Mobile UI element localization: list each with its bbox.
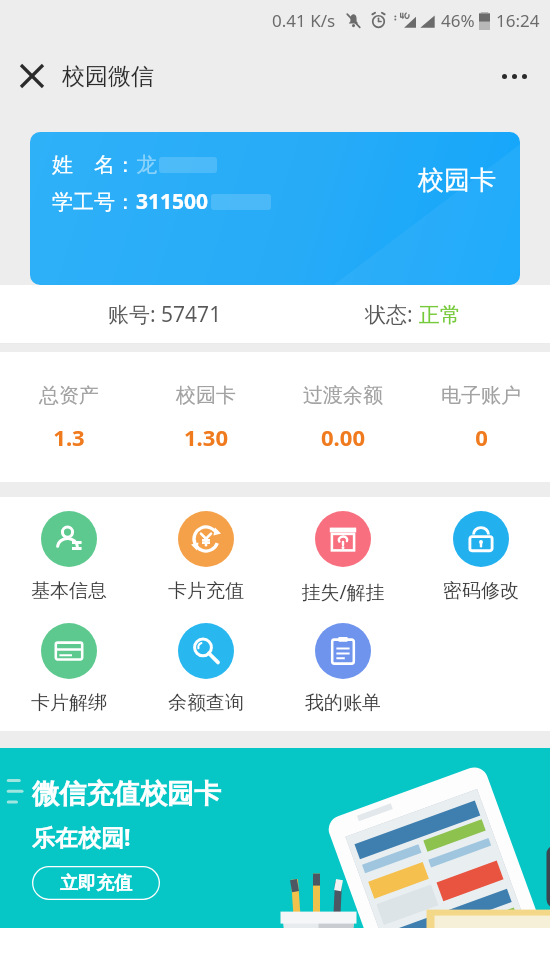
staticText: 龙 [136, 152, 157, 178]
button[interactable]: 卡片充值 [137, 511, 274, 603]
staticText: 学工号： [52, 189, 136, 215]
staticText: 0 [475, 422, 488, 452]
staticText: 46% [441, 9, 475, 32]
staticText: 我的账单 [305, 691, 381, 715]
staticText: 校园卡 [418, 164, 496, 197]
staticText: 校园微信 [62, 62, 154, 91]
staticText: 电子账户 [441, 383, 521, 408]
button[interactable]: 微信充值校园卡 [0, 748, 550, 928]
staticText: 密码修改 [443, 579, 519, 603]
button[interactable]: 挂失/解挂 [274, 511, 412, 605]
button[interactable]: 基本信息 [0, 511, 137, 603]
staticText: 微信充值校园卡 [32, 777, 221, 811]
staticText: 挂失/解挂 [301, 579, 385, 605]
staticText: 0.41 K/s [272, 9, 336, 32]
staticText: 1.30 [184, 422, 228, 452]
staticText: 立即充值 [60, 872, 132, 895]
button[interactable]: 总资产 [0, 383, 137, 452]
button[interactable]: 校园卡 [137, 383, 274, 452]
staticText: 卡片充值 [168, 579, 244, 603]
button[interactable]: 姓 名： [30, 132, 520, 285]
staticText: 0.00 [321, 422, 365, 452]
button[interactable]: 卡片解绑 [0, 623, 137, 715]
staticText: 状态: [365, 300, 419, 329]
button[interactable]: 密码修改 [412, 511, 550, 603]
button[interactable]: Close [12, 56, 52, 96]
staticText: 姓 名： [52, 150, 136, 179]
staticText: 1.3 [53, 422, 85, 452]
staticText: 乐在校园! [32, 821, 131, 852]
staticText: 过渡余额 [303, 383, 383, 408]
button[interactable]: More options [492, 54, 536, 98]
button[interactable]: 我的账单 [274, 623, 412, 715]
staticText: 311500 [136, 187, 209, 216]
button[interactable]: 余额查询 [137, 623, 274, 715]
staticText: 余额查询 [168, 691, 244, 715]
staticText: 卡片解绑 [31, 691, 107, 715]
button[interactable]: 过渡余额 [274, 383, 412, 452]
staticText: 账号: 57471 [108, 300, 222, 329]
staticText: 正常 [419, 302, 461, 328]
staticText: 校园卡 [176, 383, 236, 408]
button[interactable]: 立即充值 [32, 866, 160, 900]
button[interactable]: 电子账户 [412, 383, 550, 452]
staticText: 基本信息 [31, 579, 107, 603]
staticText: 总资产 [39, 383, 99, 408]
staticText: 16:24 [496, 9, 540, 32]
